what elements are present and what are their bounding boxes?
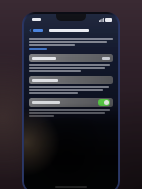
other: Schakelaar aan (98, 99, 110, 106)
button[interactable]: Terug (28, 28, 44, 33)
button[interactable]: Schakelaar aan (29, 98, 113, 107)
button[interactable] (29, 76, 113, 84)
button[interactable] (29, 54, 113, 62)
